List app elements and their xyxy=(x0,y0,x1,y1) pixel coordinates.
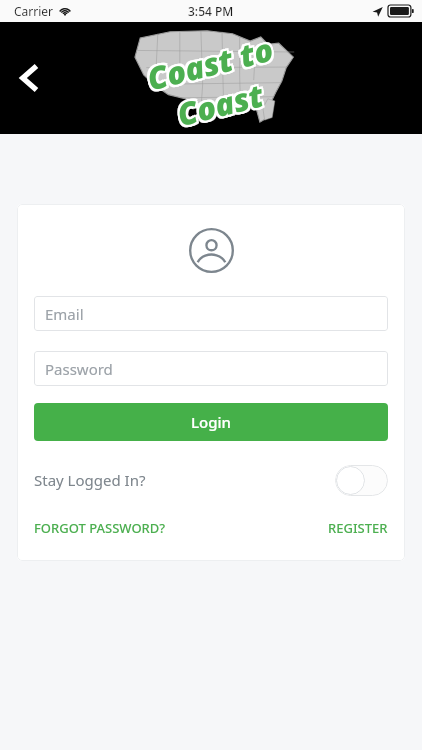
staticText: Coast to Coast xyxy=(119,20,310,144)
staticText: Coast to Coast xyxy=(118,24,309,148)
button[interactable]: REGISTER xyxy=(328,519,388,537)
staticText: Stay Logged In? xyxy=(34,470,146,490)
button[interactable]: Email xyxy=(34,296,388,331)
staticText: Login xyxy=(191,412,231,432)
staticText: Email xyxy=(45,304,84,324)
staticText: Carrier xyxy=(14,3,54,19)
staticText: Coast to Coast xyxy=(119,22,311,146)
staticText: Coast to Coast xyxy=(121,19,312,144)
staticText: 3:54 PM xyxy=(188,3,234,19)
staticText: FORGOT PASSWORD? xyxy=(34,519,166,537)
button[interactable]: Stay logged in toggle xyxy=(335,465,388,496)
staticText: Coast to Coast xyxy=(117,20,308,145)
staticText: Password xyxy=(45,359,113,379)
button[interactable]: Back xyxy=(6,54,54,102)
button[interactable]: Stay Logged In? xyxy=(34,463,388,497)
staticText: Coast to Coast xyxy=(120,24,311,148)
staticText: Coast to Coast xyxy=(117,22,309,146)
staticText: REGISTER xyxy=(328,519,388,537)
button[interactable]: Login xyxy=(34,403,388,441)
staticText: Coast to Coast xyxy=(121,21,312,146)
staticText: Coast to Coast xyxy=(122,23,313,147)
button[interactable]: Password xyxy=(34,351,388,386)
button[interactable]: FORGOT PASSWORD? xyxy=(34,519,166,537)
